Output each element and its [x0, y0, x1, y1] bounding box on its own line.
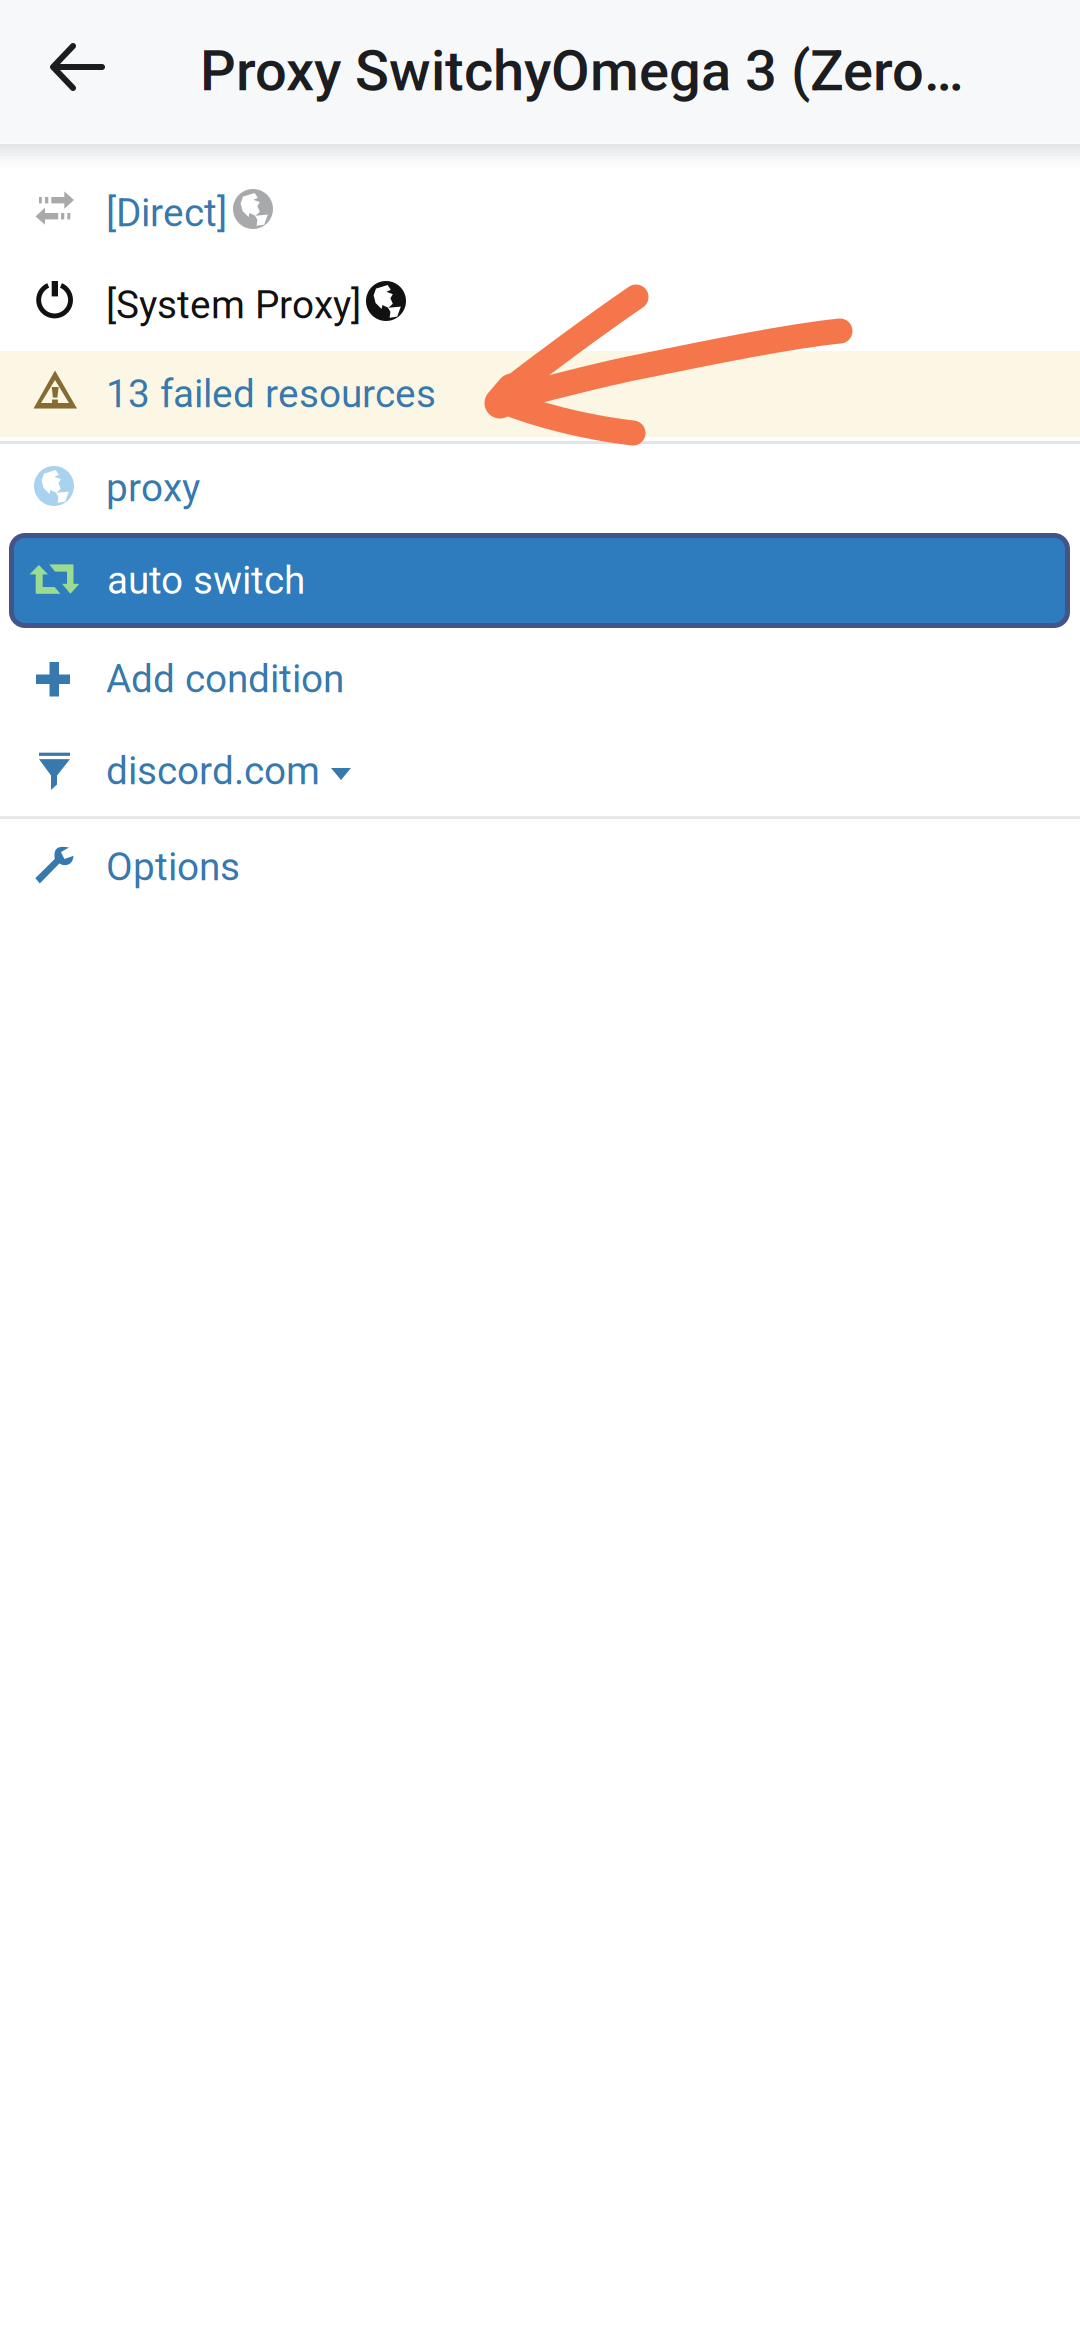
button[interactable]: Back — [0, 0, 160, 142]
staticText: Options — [106, 844, 240, 890]
staticText: [Direct] — [106, 190, 227, 236]
staticText: discord.com — [106, 748, 320, 794]
button[interactable]: [System Proxy] — [0, 0, 1080, 92]
staticText: auto switch — [107, 558, 305, 603]
button[interactable]: Options — [0, 0, 1080, 92]
staticText: 13 failed resources — [106, 371, 436, 417]
staticText: Add condition — [106, 656, 344, 702]
staticText: Proxy SwitchyOmega 3 (Zero… — [200, 38, 964, 104]
button[interactable]: auto switch — [0, 0, 1080, 95]
button[interactable]: Add condition — [0, 0, 1080, 92]
staticText: proxy — [106, 465, 200, 511]
staticText: [System Proxy] — [106, 282, 361, 328]
button[interactable]: [Direct] — [0, 0, 1080, 92]
button[interactable]: discord.com — [0, 0, 1080, 92]
button[interactable]: 13 failed resources — [0, 0, 1080, 86]
button[interactable]: proxy — [0, 0, 1080, 90]
